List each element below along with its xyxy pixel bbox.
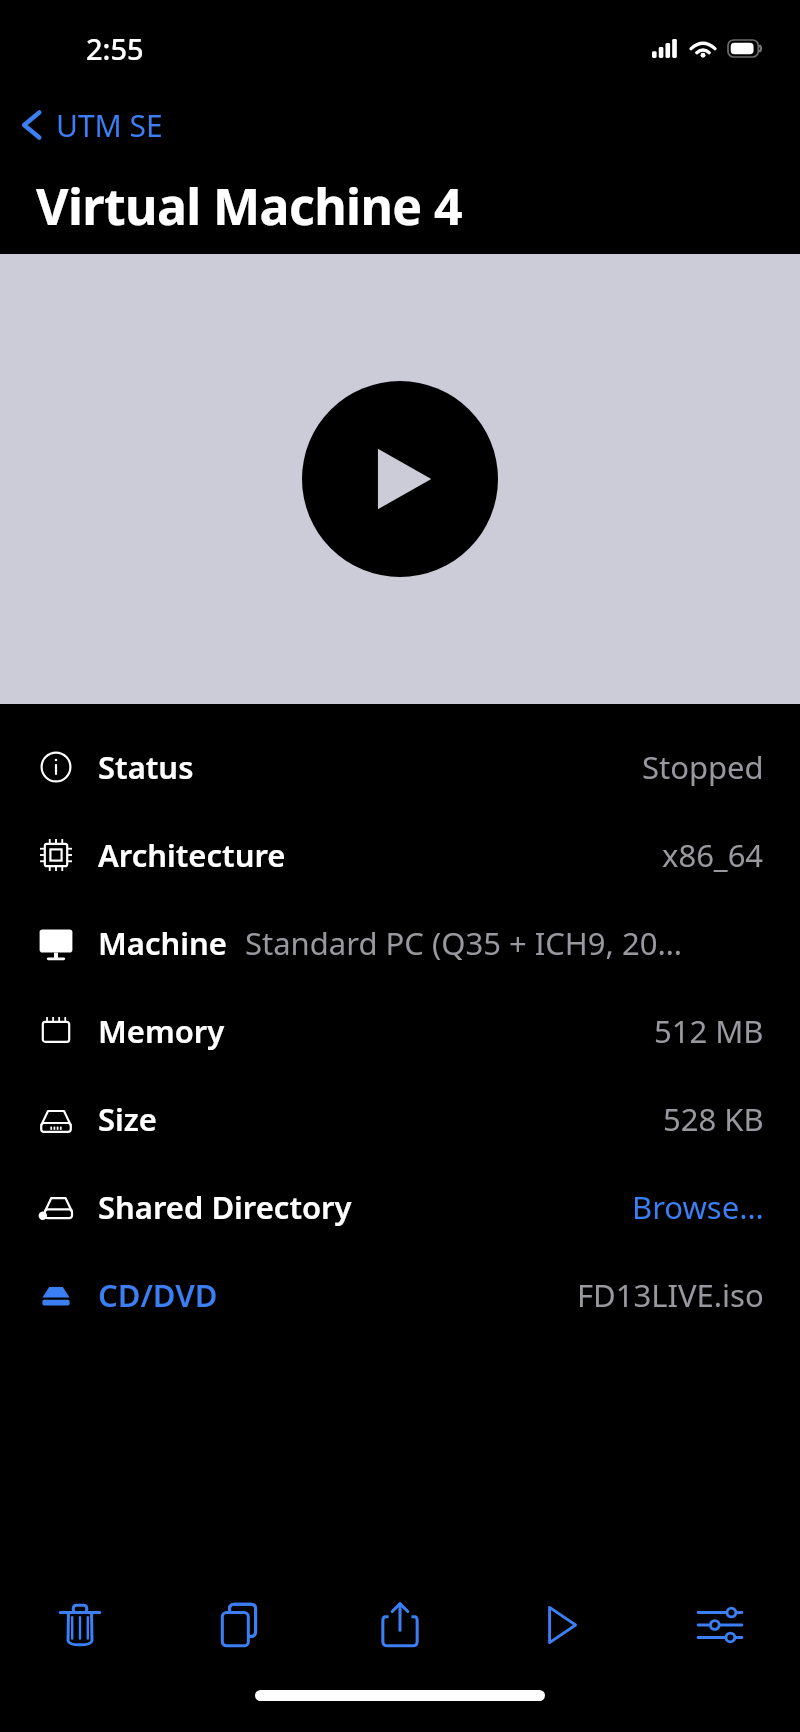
staticText: Memory xyxy=(98,1010,225,1052)
button[interactable]: Machine xyxy=(0,899,800,987)
staticText: Virtual Machine 4 xyxy=(36,172,462,240)
button[interactable]: Status xyxy=(0,723,800,811)
staticText: Browse… xyxy=(632,1186,764,1228)
button[interactable]: UTM SE xyxy=(0,92,800,158)
button[interactable]: Memory xyxy=(0,987,800,1075)
staticText: x86_64 xyxy=(662,834,764,876)
button[interactable]: Size xyxy=(0,1075,800,1163)
staticText: Size xyxy=(98,1098,157,1140)
staticText: 512 MB xyxy=(654,1010,764,1052)
button[interactable]: Settings xyxy=(640,1570,800,1680)
staticText: Machine xyxy=(98,922,227,964)
button[interactable]: CD/DVD xyxy=(0,1251,800,1339)
staticText: Standard PC (Q35 + ICH9, 20… xyxy=(245,922,764,964)
button[interactable]: Run xyxy=(480,1570,640,1680)
button[interactable]: Architecture xyxy=(0,811,800,899)
button[interactable]: Duplicate xyxy=(160,1570,320,1680)
button[interactable]: Start virtual machine xyxy=(302,381,498,577)
staticText: UTM SE xyxy=(56,105,163,146)
button[interactable]: Shared Directory xyxy=(0,1163,800,1251)
staticText: 528 KB xyxy=(663,1098,764,1140)
staticText: FD13LIVE.iso xyxy=(577,1274,764,1316)
staticText: Status xyxy=(98,746,194,788)
staticText: CD/DVD xyxy=(98,1274,218,1316)
staticText: Architecture xyxy=(98,834,286,876)
staticText: Shared Directory xyxy=(98,1186,352,1228)
button[interactable]: Delete xyxy=(0,1570,160,1680)
staticText: 2:55 xyxy=(86,29,144,68)
staticText: Stopped xyxy=(642,746,764,788)
button[interactable]: Share xyxy=(320,1570,480,1680)
